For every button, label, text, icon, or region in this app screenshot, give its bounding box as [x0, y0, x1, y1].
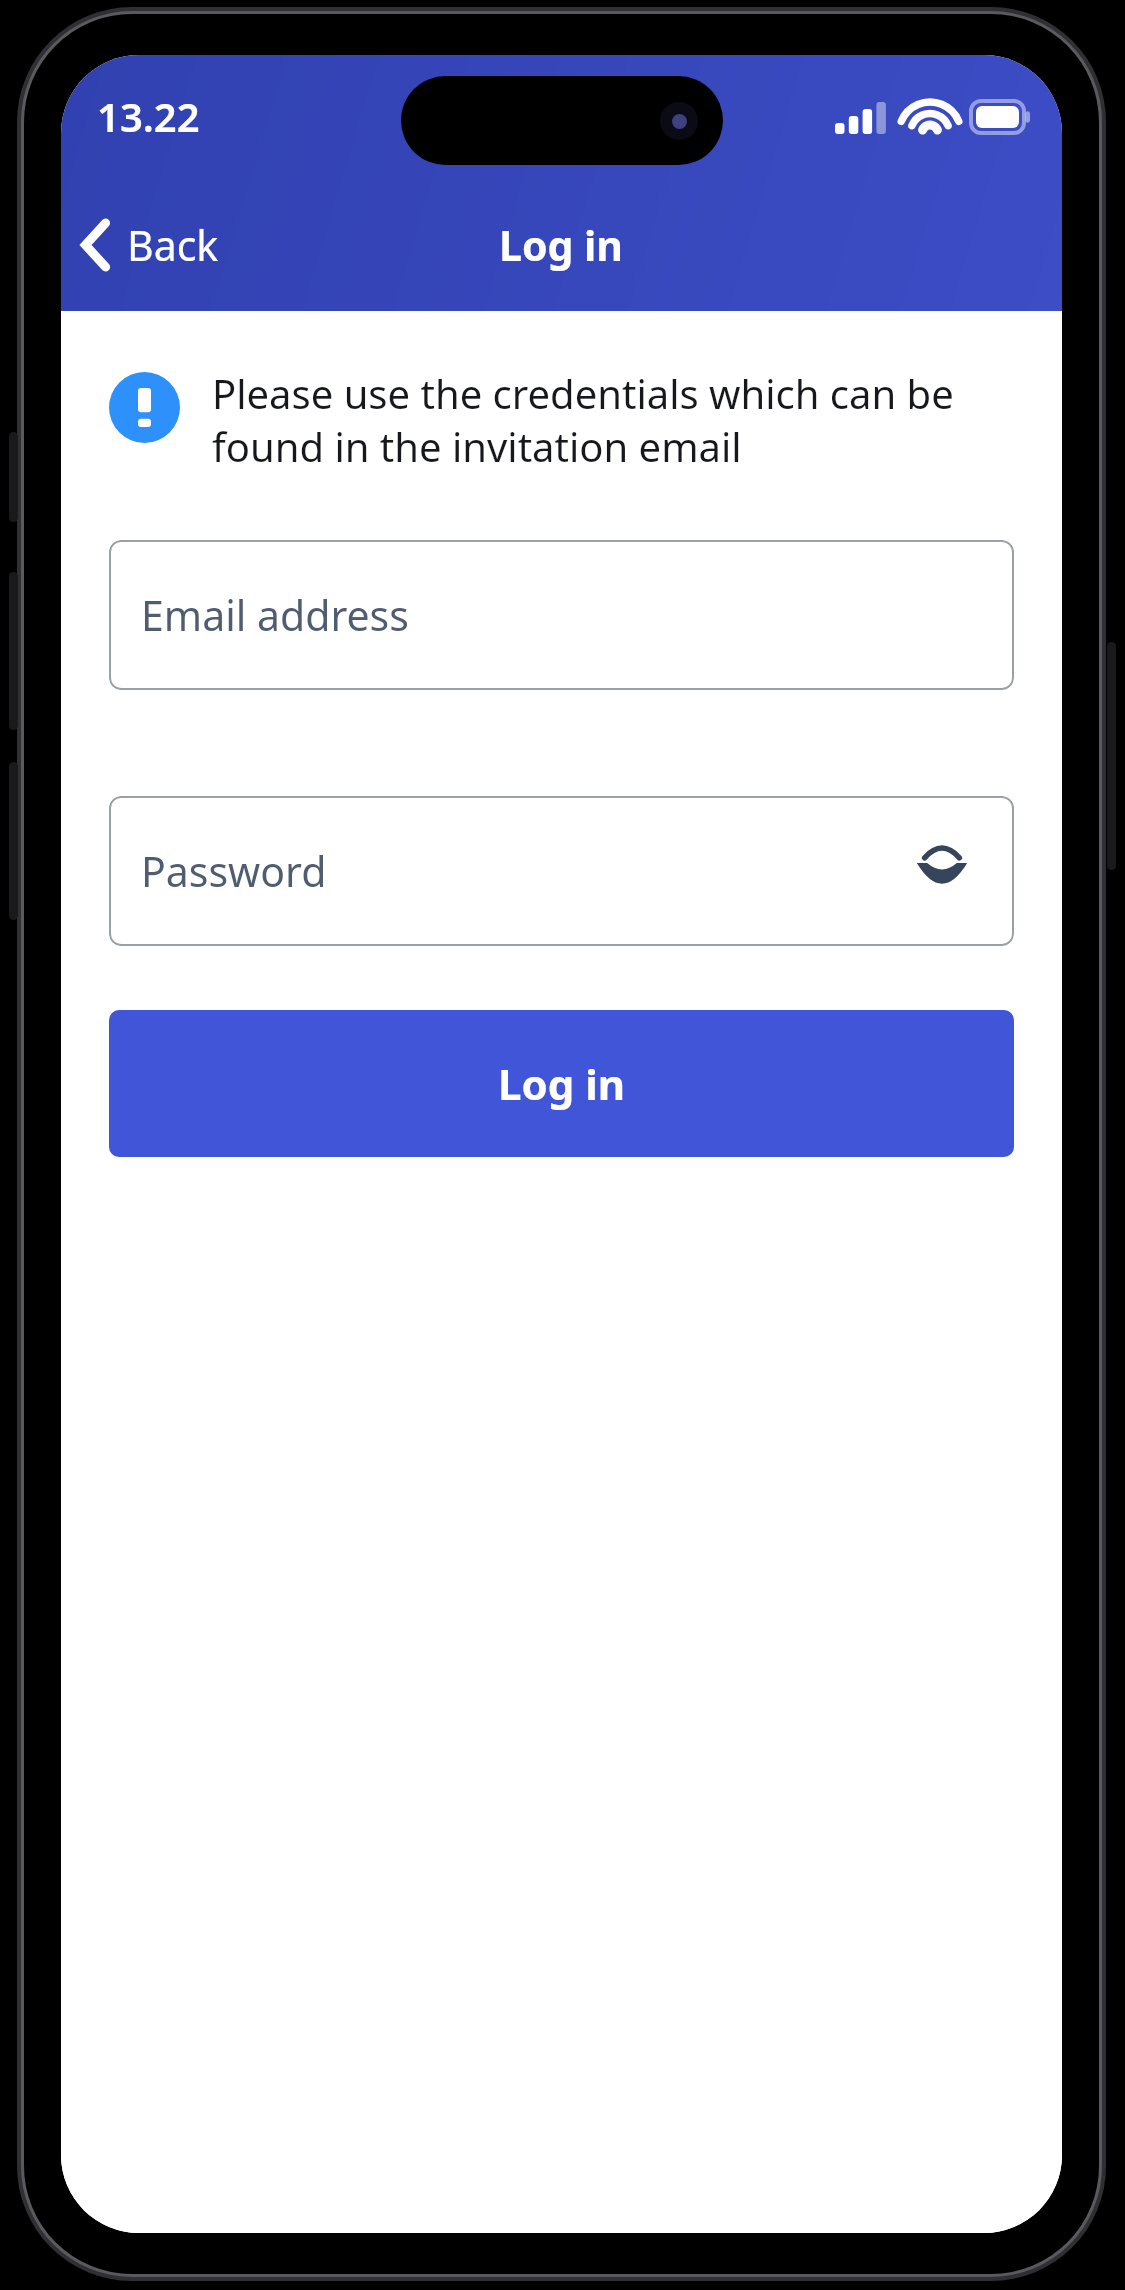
staticText: Log in	[499, 217, 624, 273]
button[interactable]: Show password	[902, 831, 982, 911]
staticText: Password	[141, 843, 327, 899]
staticText: 13.22	[97, 89, 200, 143]
button[interactable]: Back	[61, 209, 237, 281]
staticText: Please use the credentials which can be …	[212, 366, 1018, 474]
staticText: Email address	[141, 587, 409, 643]
button[interactable]: Log in	[109, 1010, 1014, 1157]
staticText: Back	[127, 217, 219, 273]
staticText: Log in	[498, 1055, 626, 1112]
button[interactable]: Password	[109, 796, 1014, 946]
button[interactable]: Email address	[109, 540, 1014, 690]
